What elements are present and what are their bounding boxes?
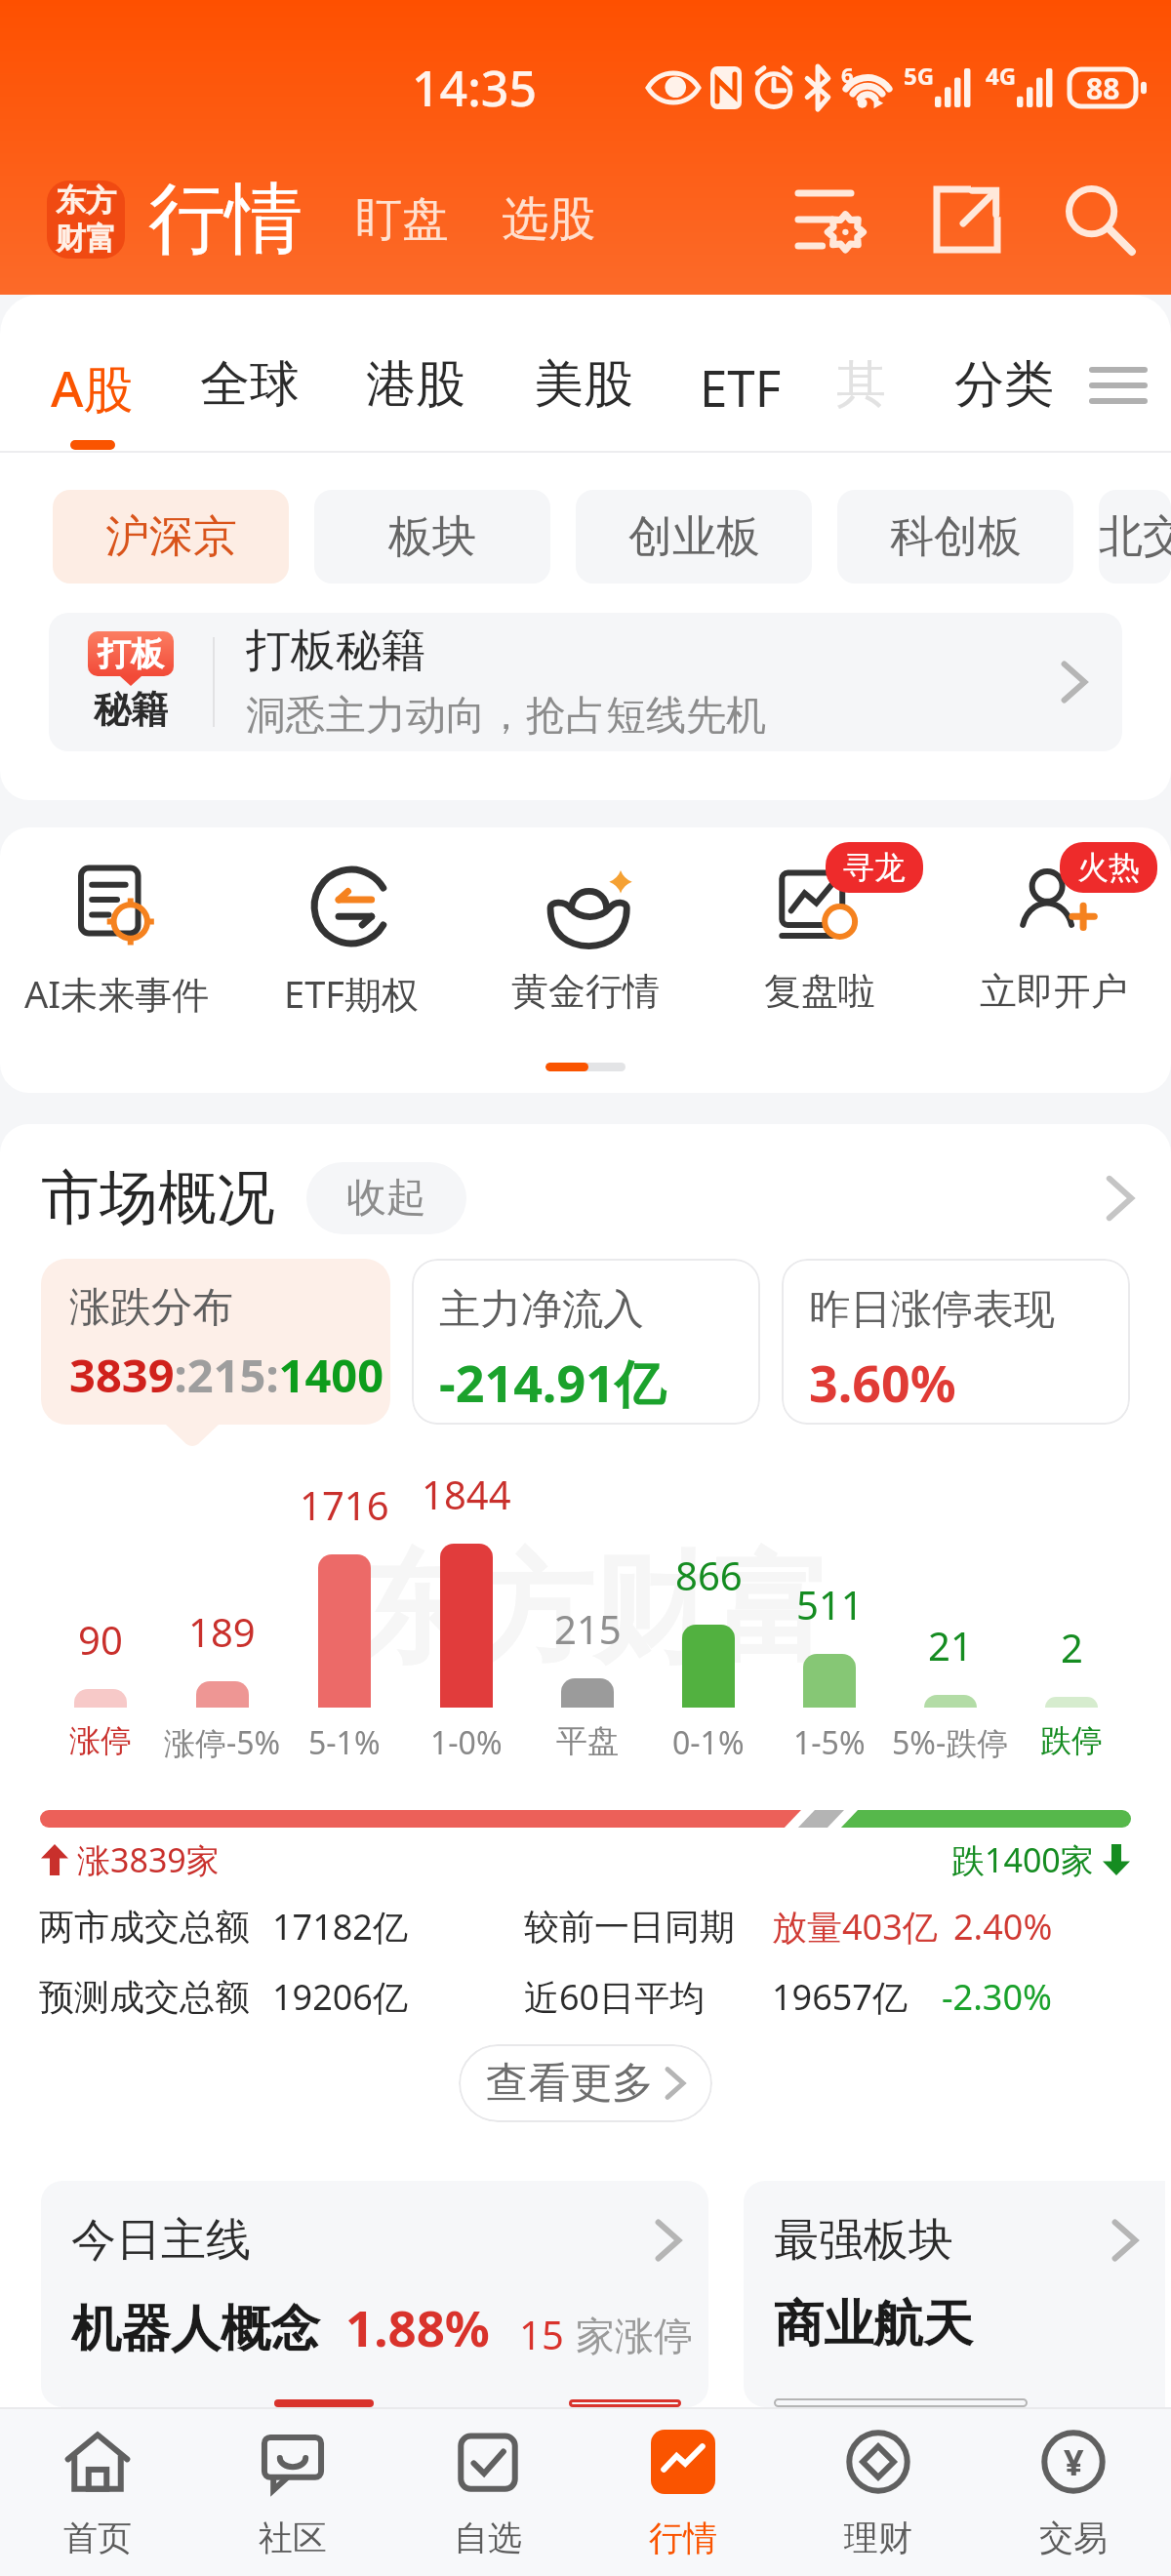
staticText: 美股: [534, 353, 633, 416]
button[interactable]: 全球: [200, 353, 300, 416]
staticText: 90: [78, 1613, 123, 1666]
button[interactable]: 行情: [585, 2409, 781, 2576]
button[interactable]: 涨跌分布: [41, 1259, 390, 1425]
button[interactable]: 沪深京: [53, 490, 289, 584]
staticText: 商业航天: [774, 2293, 973, 2355]
button[interactable]: AI未来事件: [0, 861, 234, 1019]
staticText: 14:35: [412, 55, 537, 121]
button[interactable]: Share: [925, 178, 1009, 262]
staticText: 分类: [954, 353, 1054, 416]
staticText: 复盘啦: [764, 968, 875, 1015]
staticText: 215: [554, 1602, 622, 1655]
button[interactable]: 选股: [494, 175, 603, 264]
staticText: 跌停: [1040, 1721, 1103, 1760]
button[interactable]: 理财: [781, 2409, 976, 2576]
button[interactable]: 首页: [0, 2409, 195, 2576]
staticText: 黄金行情: [511, 968, 660, 1015]
staticText: 866: [675, 1549, 743, 1601]
button[interactable]: 今日主线: [41, 2181, 708, 2407]
staticText: 秘籍: [94, 686, 168, 733]
button[interactable]: 自选: [390, 2409, 585, 2576]
staticText: 88: [1086, 68, 1120, 108]
staticText: 1-0%: [430, 1721, 503, 1764]
staticText: 北交所: [1099, 509, 1171, 565]
staticText: 近60日平均: [524, 1973, 706, 2021]
staticText: 其: [836, 353, 886, 416]
button[interactable]: 昨日涨停表现: [782, 1259, 1130, 1425]
button[interactable]: 最强板块: [744, 2181, 1165, 2407]
button[interactable]: 科创板: [837, 490, 1073, 584]
button[interactable]: 盯盘: [347, 175, 457, 264]
button[interactable]: 查看更多: [459, 2044, 712, 2122]
staticText: 5%-跌停: [892, 1721, 1009, 1764]
staticText: 跌1400家: [951, 1837, 1094, 1882]
button[interactable]: A股: [51, 295, 134, 450]
staticText: 1716: [300, 1478, 389, 1531]
button[interactable]: 黄金行情: [468, 861, 703, 1015]
staticText: -2.30%: [942, 1973, 1052, 2021]
staticText: 5-1%: [308, 1721, 381, 1764]
staticText: 盯盘: [355, 190, 449, 249]
staticText: 平盘: [556, 1721, 619, 1760]
button[interactable]: ETF期权: [234, 861, 468, 1019]
staticText: 4G: [986, 60, 1017, 92]
staticText: 预测成交总额: [39, 1975, 250, 2019]
staticText: 板块: [388, 509, 476, 565]
button[interactable]: 美股: [534, 353, 633, 416]
staticText: ¥: [1064, 2438, 1084, 2486]
staticText: 创业板: [628, 509, 760, 565]
staticText: 东方财富: [355, 1536, 831, 1686]
button[interactable]: 火热: [937, 861, 1171, 1015]
staticText: 19206亿: [272, 1973, 408, 2021]
staticText: 火热: [1077, 848, 1140, 887]
staticText: 交易: [1039, 2516, 1108, 2559]
staticText: 查看更多: [486, 2057, 654, 2110]
button[interactable]: Search: [1058, 178, 1142, 262]
staticText: 0-1%: [672, 1721, 745, 1764]
staticText: 15: [519, 2308, 564, 2360]
staticText: A股: [51, 353, 134, 422]
staticText: 放量403亿: [772, 1903, 938, 1951]
button[interactable]: More tabs: [1087, 355, 1150, 416]
staticText: -214.91亿: [439, 1348, 666, 1417]
button[interactable]: Filter settings: [788, 178, 872, 262]
staticText: 理财: [844, 2516, 912, 2559]
staticText: 1-5%: [793, 1721, 866, 1764]
staticText: 港股: [366, 353, 465, 416]
staticText: 6: [841, 60, 854, 89]
staticText: 主力净流入: [439, 1284, 644, 1336]
button[interactable]: 市场概况: [41, 1138, 1134, 1259]
staticText: 选股: [502, 190, 595, 249]
staticText: 沪深京: [105, 509, 237, 565]
button[interactable]: 主力净流入: [412, 1259, 760, 1425]
staticText: 市场概况: [41, 1161, 275, 1235]
staticText: 涨3839家: [77, 1837, 220, 1882]
staticText: 3839:215:1400: [69, 1344, 384, 1406]
staticText: 首页: [63, 2516, 132, 2559]
staticText: 科创板: [890, 509, 1022, 565]
staticText: 立即开户: [980, 968, 1128, 1015]
staticText: ETF期权: [284, 968, 419, 1019]
button[interactable]: 分类: [954, 353, 1054, 416]
button[interactable]: ETF: [700, 353, 782, 421]
staticText: 东方: [56, 181, 116, 220]
staticText: 2: [1061, 1621, 1083, 1673]
button[interactable]: 创业板: [576, 490, 812, 584]
staticText: 17182亿: [272, 1903, 408, 1951]
button[interactable]: ¥: [976, 2409, 1171, 2576]
staticText: 涨停-5%: [164, 1721, 281, 1764]
button[interactable]: 港股: [366, 353, 465, 416]
staticText: AI未来事件: [24, 968, 210, 1019]
button[interactable]: 社区: [195, 2409, 390, 2576]
button[interactable]: 北交所: [1099, 490, 1171, 584]
button[interactable]: 板块: [314, 490, 550, 584]
staticText: 5G: [904, 60, 935, 92]
staticText: 社区: [259, 2516, 327, 2559]
button[interactable]: 寻龙: [703, 861, 937, 1015]
staticText: 21: [928, 1619, 973, 1671]
staticText: 涨停: [69, 1721, 132, 1760]
button[interactable]: 打板: [49, 613, 1122, 751]
staticText: 两市成交总额: [39, 1905, 250, 1949]
